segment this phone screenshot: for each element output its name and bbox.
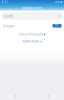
button[interactable]: search — [2, 13, 62, 19]
staticText: about this result — [19, 33, 43, 36]
staticText: Sign in — [54, 22, 60, 29]
button[interactable]: learn more — [22, 39, 42, 43]
button[interactable]: Sign in — [52, 24, 61, 28]
staticText: 9:41 — [1, 0, 8, 4]
staticText: google.com — [22, 5, 42, 10]
staticText: learn more — [22, 39, 39, 43]
button[interactable]: about this result — [19, 33, 45, 36]
staticText: search — [4, 14, 13, 18]
staticText: Google — [2, 23, 14, 28]
